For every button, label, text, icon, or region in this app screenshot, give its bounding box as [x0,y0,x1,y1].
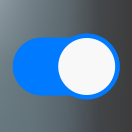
button[interactable]: Toggle [13,33,120,99]
